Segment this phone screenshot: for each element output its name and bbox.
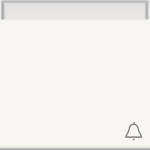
button[interactable]: Doorbell <box>0 0 150 150</box>
